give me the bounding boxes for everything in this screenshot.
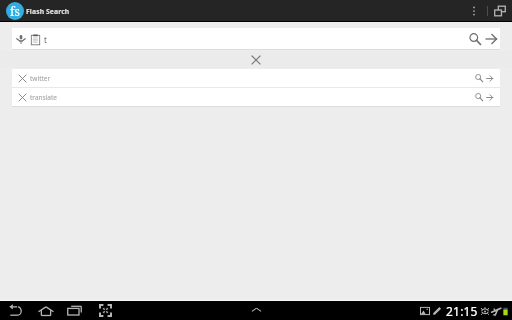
button[interactable]: Go (483, 31, 499, 47)
button[interactable]: Use twitter (482, 71, 496, 85)
button[interactable]: More options (466, 3, 482, 19)
button[interactable]: Search for translate (472, 90, 486, 104)
button[interactable]: Screenshot (96, 301, 115, 320)
button[interactable]: Flash Search app icon (6, 2, 24, 20)
button[interactable]: Remove translate (12, 88, 500, 106)
button[interactable]: Paste from clipboard (28, 32, 42, 46)
button[interactable]: Home (36, 301, 55, 320)
button[interactable]: Expand status bar (246, 301, 266, 320)
button[interactable]: Remove translate (15, 90, 29, 104)
button[interactable]: Search for twitter (472, 71, 486, 85)
button[interactable]: Voice search (14, 32, 28, 46)
staticText: t (44, 34, 47, 45)
button[interactable]: Edit (431, 305, 443, 317)
button[interactable]: Remove twitter (15, 71, 29, 85)
staticText: twitter (30, 74, 51, 83)
button[interactable]: Close suggestions (0, 51, 512, 68)
button[interactable]: Search (467, 31, 483, 47)
staticText: Flash Search (26, 7, 70, 16)
button[interactable]: Flash Search (26, 0, 70, 22)
staticText: translate (30, 93, 58, 102)
button[interactable]: Search query input (44, 28, 467, 50)
button[interactable]: Back (6, 301, 25, 320)
staticText: fs (10, 3, 20, 19)
button[interactable]: Restore window (492, 3, 508, 19)
button[interactable]: Screenshots (418, 304, 431, 317)
staticText: 21:15 (446, 303, 478, 319)
button[interactable]: Use translate (482, 90, 496, 104)
button[interactable]: Recent apps (65, 301, 84, 320)
button[interactable]: Remove twitter (12, 69, 500, 87)
